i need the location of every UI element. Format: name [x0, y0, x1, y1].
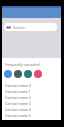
button[interactable]: [14, 70, 22, 78]
button[interactable]: Contact name 3: [2, 100, 61, 106]
button[interactable]: Contact name 0: [2, 82, 61, 88]
button[interactable]: [4, 70, 12, 78]
staticText: Contact name 3: [5, 101, 31, 106]
staticText: Contact name 2: [5, 95, 31, 100]
button[interactable]: Contact name 2: [2, 94, 61, 100]
staticText: Search: [13, 25, 26, 30]
button[interactable]: Search: [4, 23, 57, 31]
staticText: Contact name 1: [5, 89, 31, 94]
staticText: Contact name 4: [5, 107, 31, 112]
button[interactable]: [24, 70, 32, 78]
staticText: Contact name 0: [5, 83, 31, 88]
staticText: Contact name 5: [5, 113, 31, 118]
button[interactable]: [34, 70, 42, 78]
button[interactable]: Contact name 1: [2, 88, 61, 94]
staticText: Frequently contacted: [5, 62, 40, 67]
button[interactable]: Contact name 5: [2, 112, 61, 118]
button[interactable]: Contact name 4: [2, 106, 61, 112]
